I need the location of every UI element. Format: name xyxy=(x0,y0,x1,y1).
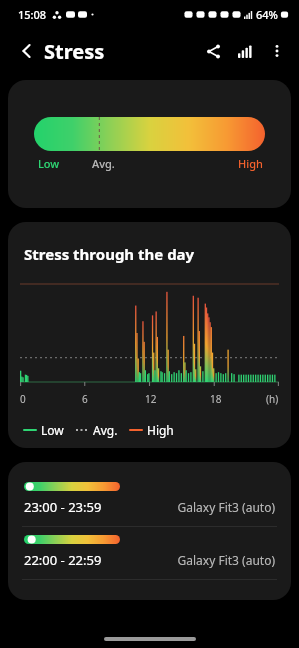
button[interactable]: Stress through the day xyxy=(8,222,291,448)
staticText: Stress through the day xyxy=(24,244,195,264)
staticText: 12 xyxy=(145,392,157,406)
staticText: 0 xyxy=(20,392,26,406)
staticText: High xyxy=(238,156,263,171)
staticText: 22:00 - 22:59 xyxy=(24,551,102,569)
staticText: 6 xyxy=(82,392,88,406)
button[interactable]: Low xyxy=(8,80,291,208)
button[interactable]: 23:00 - 23:59 xyxy=(8,474,291,526)
button[interactable]: Back xyxy=(10,34,44,68)
staticText: Galaxy Fit3 (auto) xyxy=(177,552,275,568)
button[interactable]: Share xyxy=(197,35,229,67)
staticText: 18 xyxy=(210,392,222,406)
staticText: Low xyxy=(41,422,64,438)
staticText: 64% xyxy=(256,7,278,22)
staticText: Avg. xyxy=(92,156,115,171)
staticText: Stress xyxy=(44,38,105,65)
staticText: High xyxy=(147,422,174,438)
staticText: 15:08 xyxy=(18,7,47,22)
button[interactable]: More options xyxy=(261,35,293,67)
staticText: (h) xyxy=(266,392,279,406)
staticText: 23:00 - 23:59 xyxy=(24,498,102,516)
button[interactable]: Chart xyxy=(229,35,261,67)
staticText: Avg. xyxy=(93,422,118,438)
staticText: Galaxy Fit3 (auto) xyxy=(177,499,275,515)
staticText: Low xyxy=(38,156,60,171)
button[interactable]: 22:00 - 22:59 xyxy=(8,527,291,579)
